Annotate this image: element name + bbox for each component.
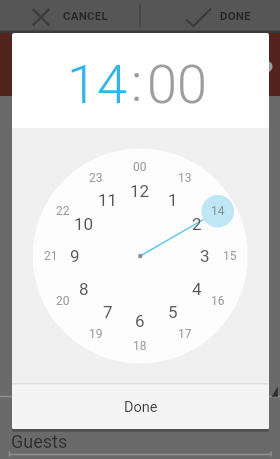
staticText: 21 xyxy=(44,249,58,263)
button[interactable] xyxy=(0,0,140,31)
staticText: 14 xyxy=(211,204,225,218)
staticText: Guests xyxy=(11,431,68,452)
staticText: 12 xyxy=(130,181,150,201)
staticText: 14 xyxy=(67,53,127,116)
staticText: 1 xyxy=(168,190,178,210)
staticText: 10 xyxy=(74,214,94,234)
staticText: 4 xyxy=(192,279,202,299)
staticText: 15 xyxy=(223,249,237,263)
staticText: 00 xyxy=(133,160,147,174)
staticText: Done xyxy=(124,399,158,416)
button[interactable]: 00 xyxy=(132,44,222,124)
staticText: 6 xyxy=(135,311,145,331)
staticText: 00 xyxy=(147,53,207,116)
staticText: 5 xyxy=(168,302,178,322)
staticText: 18 xyxy=(133,339,147,353)
staticText: 16 xyxy=(211,294,225,308)
staticText: DONE xyxy=(220,9,251,22)
staticText: 19 xyxy=(89,327,103,341)
staticText: CANCEL xyxy=(63,9,108,22)
staticText: 3 xyxy=(200,246,210,266)
staticText: 7 xyxy=(103,302,113,322)
staticText: 20 xyxy=(56,294,70,308)
button[interactable]: Done xyxy=(12,385,269,429)
staticText: 23 xyxy=(89,171,103,185)
staticText: 2 xyxy=(192,214,202,234)
staticText: 11 xyxy=(98,190,118,210)
staticText: 17 xyxy=(178,327,192,341)
staticText: : xyxy=(131,51,143,114)
staticText: 22 xyxy=(56,204,70,218)
button[interactable] xyxy=(140,0,280,31)
staticText: 8 xyxy=(79,279,89,299)
staticText: 9 xyxy=(70,246,80,266)
button[interactable]: 14 xyxy=(52,44,142,124)
staticText: 13 xyxy=(178,171,192,185)
